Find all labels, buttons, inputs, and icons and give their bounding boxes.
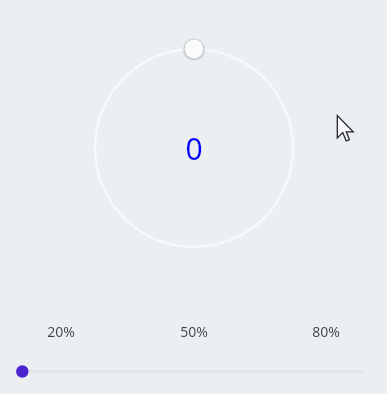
staticText: 50%	[180, 322, 208, 341]
staticText: 20%	[47, 322, 75, 341]
button[interactable]: Value slider	[8, 357, 379, 386]
button[interactable]: Circular slider, value 0	[79, 33, 309, 263]
staticText: 0	[185, 128, 203, 169]
button[interactable]: 20%	[31, 319, 91, 343]
staticText: 80%	[312, 322, 340, 341]
button[interactable]: 50%	[164, 319, 224, 343]
button[interactable]: 80%	[296, 319, 356, 343]
